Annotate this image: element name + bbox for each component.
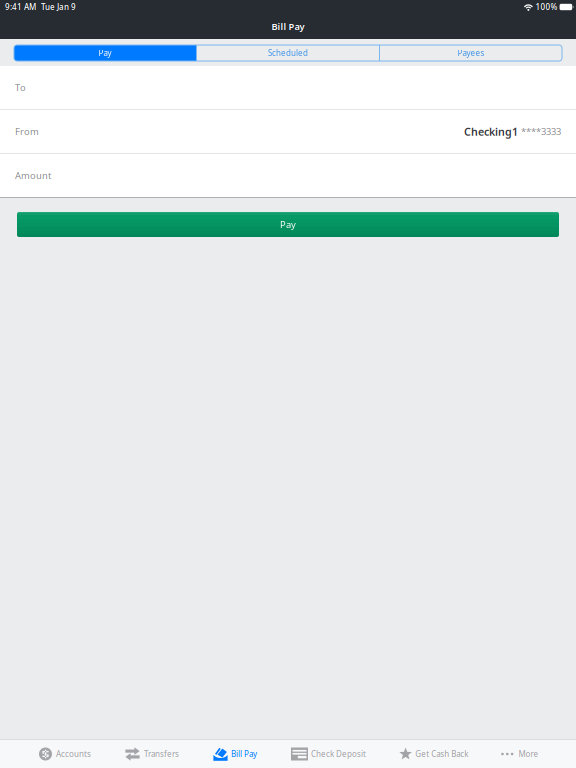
button[interactable]: Scheduled xyxy=(197,45,379,61)
button[interactable]: Pay xyxy=(14,45,196,61)
button[interactable]: Get Cash Back xyxy=(399,740,468,768)
staticText: Bill Pay xyxy=(271,20,304,33)
staticText: 9:41 AM xyxy=(5,2,36,12)
staticText: Pay xyxy=(98,48,111,58)
button[interactable]: Accounts xyxy=(39,740,91,768)
staticText: Check Deposit xyxy=(311,749,366,759)
staticText: Scheduled xyxy=(268,48,308,58)
button[interactable]: Check Deposit xyxy=(291,740,366,768)
staticText: Checking1 xyxy=(464,124,518,139)
staticText: Bill Pay xyxy=(231,749,257,759)
staticText: To xyxy=(15,81,26,94)
staticText: Get Cash Back xyxy=(415,749,468,759)
button[interactable]: Payees xyxy=(380,45,562,61)
button[interactable]: Pay xyxy=(17,212,559,237)
button[interactable]: More xyxy=(501,740,538,768)
button[interactable]: From xyxy=(0,110,576,153)
staticText: 100% xyxy=(536,2,558,12)
button[interactable]: Transfers xyxy=(125,740,179,768)
button[interactable]: Bill Pay xyxy=(213,740,257,768)
staticText: Amount xyxy=(15,169,51,182)
staticText: Tue Jan 9 xyxy=(41,2,76,12)
staticText: ****3333 xyxy=(521,125,561,138)
staticText: Transfers xyxy=(144,749,179,759)
staticText: Pay xyxy=(280,218,296,231)
staticText: Payees xyxy=(457,48,484,58)
staticText: From xyxy=(15,125,39,138)
staticText: More xyxy=(518,749,538,759)
staticText: Accounts xyxy=(56,749,91,759)
button[interactable]: Amount xyxy=(0,154,576,197)
